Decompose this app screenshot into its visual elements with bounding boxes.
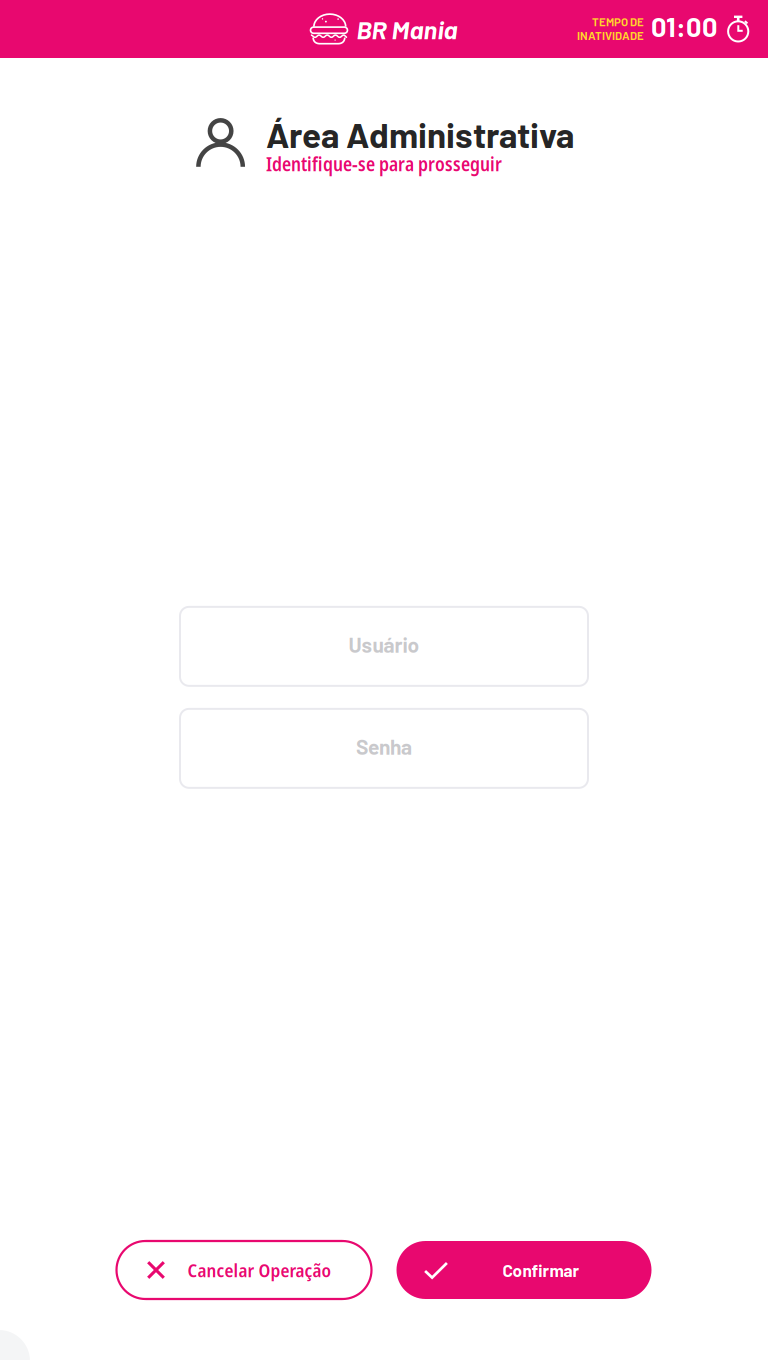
- staticText: Senha: [356, 734, 412, 759]
- staticText: BR Mania: [356, 14, 457, 44]
- staticText: Identifique-se para prosseguir: [266, 151, 502, 177]
- staticText: INATIVIDADE: [577, 28, 644, 42]
- staticText: 01:00: [651, 10, 718, 42]
- staticText: Área Administrativa: [266, 113, 574, 155]
- staticText: Usuário: [348, 632, 419, 657]
- staticText: Confirmar: [502, 1260, 579, 1280]
- button[interactable]: Confirmar: [396, 1241, 651, 1299]
- button[interactable]: Cancelar Operação: [116, 1241, 371, 1299]
- staticText: Cancelar Operação: [187, 1257, 331, 1283]
- staticText: TEMPO DE: [592, 15, 644, 28]
